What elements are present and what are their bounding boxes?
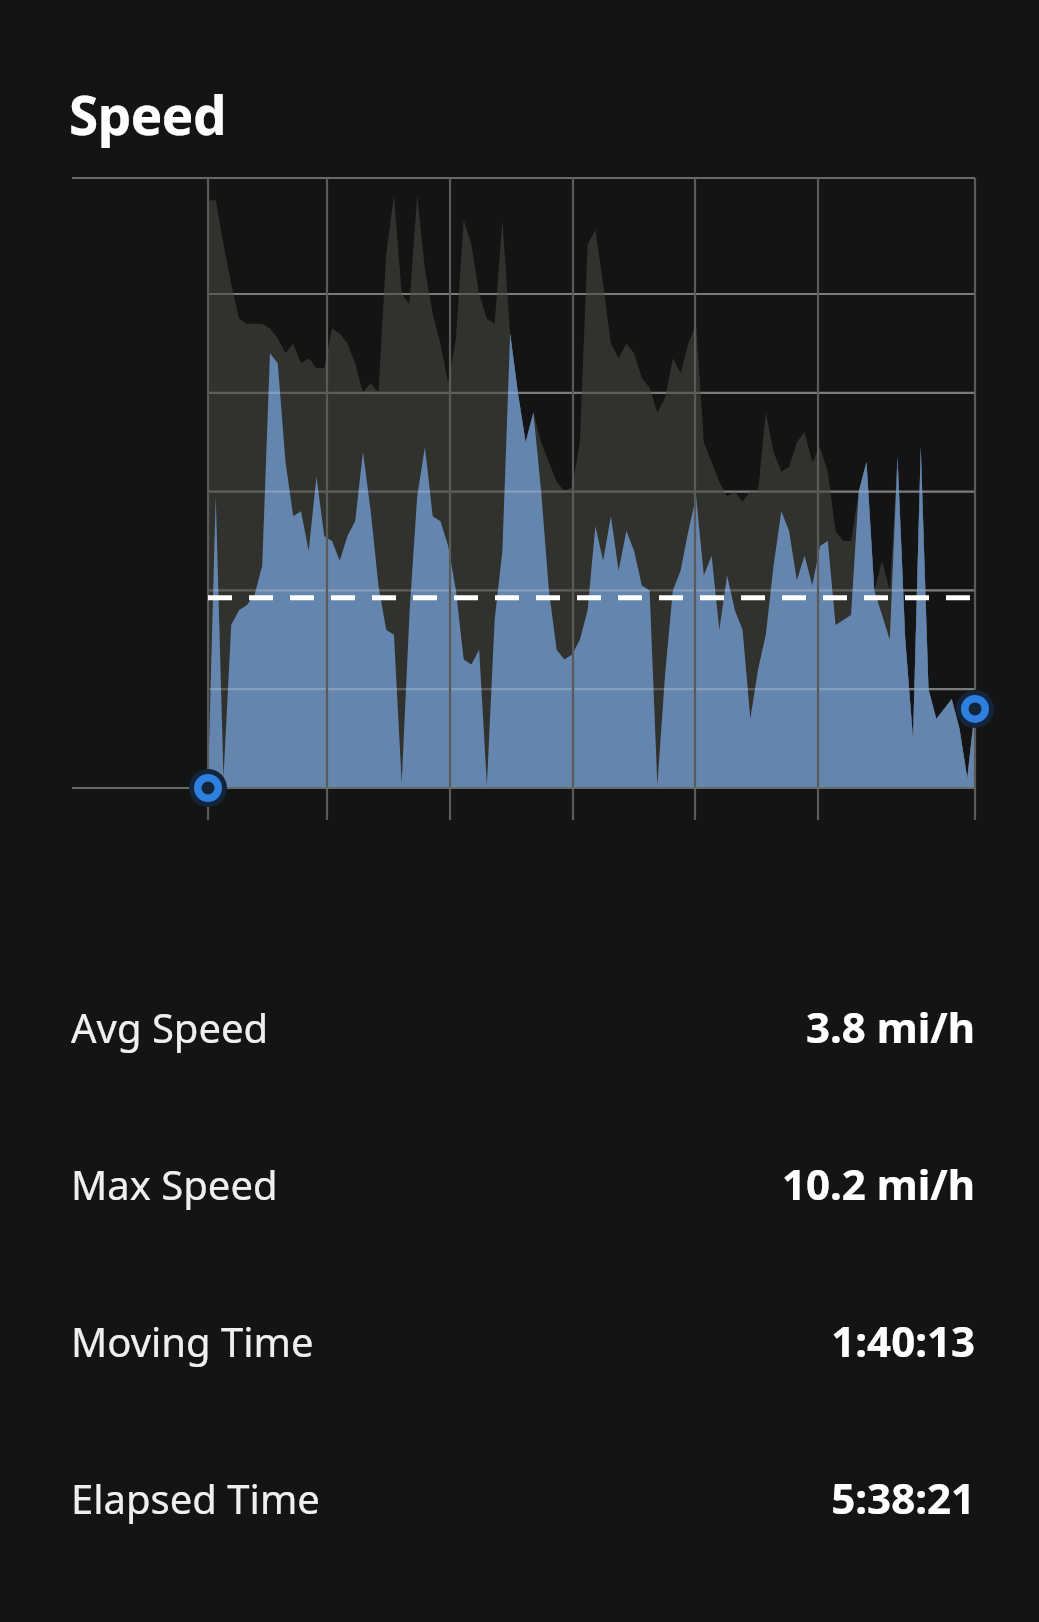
button[interactable]: Elapsed Time (0, 1419, 1039, 1576)
button[interactable]: Max Speed (0, 1105, 1039, 1262)
staticText: Max Speed (71, 1157, 278, 1211)
button[interactable]: Avg Speed (0, 948, 1039, 1105)
staticText: 3.8 mi/h (805, 998, 975, 1055)
staticText: 10.2 mi/h (781, 1155, 975, 1212)
staticText: 5:38:21 (831, 1469, 975, 1526)
staticText: Moving Time (71, 1314, 314, 1368)
staticText: Speed (69, 78, 226, 150)
button[interactable]: Moving Time (0, 1262, 1039, 1419)
staticText: 1:40:13 (831, 1312, 975, 1369)
staticText: Avg Speed (71, 1000, 269, 1054)
staticText: Elapsed Time (71, 1471, 320, 1525)
